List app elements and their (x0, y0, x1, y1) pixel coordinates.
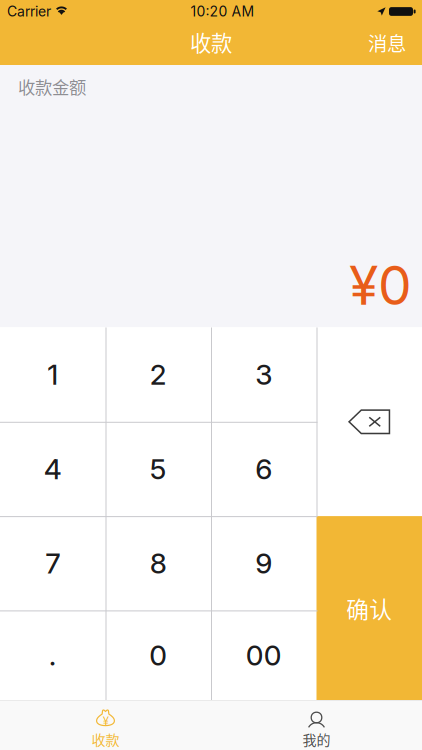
staticText: 00 (246, 638, 282, 672)
staticText: 收款 (91, 729, 119, 749)
button[interactable]: 5 (105, 422, 211, 516)
staticText: . (49, 638, 57, 672)
staticText: 收款 (190, 27, 232, 57)
staticText: 9 (255, 546, 272, 580)
button[interactable]: 6 (211, 422, 316, 516)
button[interactable]: ¥ (0, 700, 211, 750)
staticText: 1 (47, 358, 58, 392)
staticText: 7 (45, 546, 60, 580)
button[interactable]: 2 (105, 327, 211, 422)
staticText: 0 (149, 638, 167, 672)
staticText: 4 (44, 452, 62, 486)
staticText: 我的 (302, 729, 330, 749)
staticText: 2 (150, 358, 167, 392)
staticText: 10:20 AM (190, 3, 254, 20)
button[interactable]: 00 (211, 610, 316, 700)
button[interactable]: 1 (0, 327, 105, 422)
button[interactable]: 0 (105, 610, 211, 700)
staticText: ¥0 (349, 253, 412, 317)
staticText: ¥ (103, 714, 109, 728)
button[interactable]: 我的 (211, 700, 422, 750)
button[interactable]: 9 (211, 516, 316, 610)
button[interactable]: 7 (0, 516, 105, 610)
button[interactable]: . (0, 610, 105, 700)
button[interactable]: 消息 (352, 23, 422, 65)
button[interactable]: 8 (105, 516, 211, 610)
staticText: 确认 (346, 592, 392, 624)
staticText: 6 (255, 452, 272, 486)
staticText: 8 (150, 546, 167, 580)
staticText: 3 (255, 358, 272, 392)
button[interactable]: 4 (0, 422, 105, 516)
staticText: Carrier (7, 3, 51, 20)
staticText: 消息 (368, 28, 406, 56)
staticText: 收款金额 (18, 74, 86, 99)
button[interactable]: 删除 (316, 327, 422, 516)
staticText: 5 (150, 452, 167, 486)
button[interactable]: 3 (211, 327, 316, 422)
button[interactable]: 确认 (316, 516, 422, 700)
